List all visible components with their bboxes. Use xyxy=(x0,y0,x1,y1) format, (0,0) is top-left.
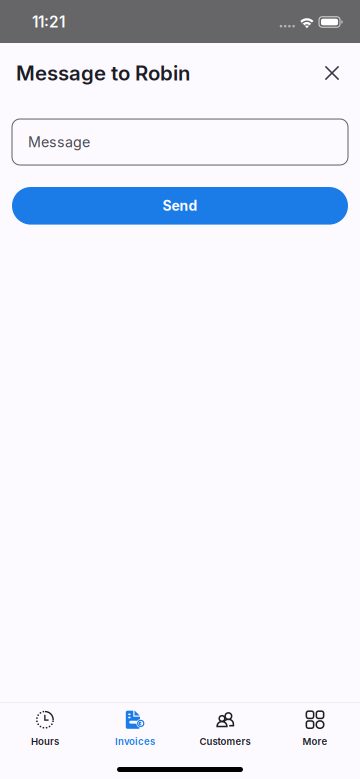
button[interactable]: Hours xyxy=(0,703,90,751)
button[interactable]: Customers xyxy=(180,703,270,751)
button[interactable]: Close xyxy=(313,54,351,92)
staticText: Message xyxy=(28,133,90,151)
button[interactable]: Invoices xyxy=(90,703,180,751)
button[interactable]: Send xyxy=(12,187,348,225)
staticText: Message to Robin xyxy=(16,61,190,85)
staticText: Invoices xyxy=(115,736,155,747)
staticText: Send xyxy=(162,197,197,214)
staticText: 11:21 xyxy=(32,13,65,31)
staticText: Hours xyxy=(31,736,59,747)
staticText: More xyxy=(302,736,327,747)
staticText: Customers xyxy=(199,736,250,747)
button[interactable]: More xyxy=(270,703,360,751)
